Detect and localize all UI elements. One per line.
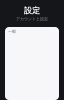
- staticText: 一般: [8, 29, 16, 34]
- staticText: アカウントと設定: [16, 16, 48, 21]
- staticText: 設定: [24, 6, 40, 15]
